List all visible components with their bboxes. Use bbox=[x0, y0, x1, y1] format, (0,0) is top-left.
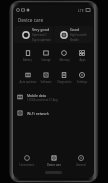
button[interactable]: Apps bbox=[73, 50, 91, 62]
button[interactable]: Diagnostics bbox=[55, 72, 73, 84]
staticText: Wi-Fi network bbox=[27, 111, 49, 116]
staticText: Storage bbox=[41, 58, 51, 62]
button[interactable]: Good battery bbox=[54, 26, 93, 43]
button[interactable]: Device care bbox=[40, 155, 67, 167]
button[interactable]: Software update bbox=[37, 72, 55, 84]
button[interactable]: Very good bbox=[14, 26, 53, 43]
staticText: Auto optimise bbox=[19, 80, 37, 84]
button[interactable]: Mobile data bbox=[15, 89, 92, 105]
staticText: Diagnostics bbox=[57, 80, 72, 84]
staticText: 1.8 GB used since 21 Aug bbox=[27, 98, 58, 102]
staticText: Connections bbox=[19, 163, 35, 167]
staticText: General bbox=[76, 163, 86, 167]
button[interactable]: Connections bbox=[13, 155, 40, 167]
staticText: Good battery bbox=[70, 27, 92, 32]
staticText: Device care bbox=[47, 163, 61, 167]
button[interactable]: General bbox=[67, 155, 94, 167]
staticText: Device care bbox=[18, 17, 44, 23]
staticText: Battery bbox=[23, 58, 32, 62]
staticText: Memory bbox=[59, 58, 70, 62]
button[interactable]: Auto optimise bbox=[18, 72, 37, 84]
staticText: High but with bbox=[70, 33, 87, 37]
staticText: Optimised 1 hour ago bbox=[32, 33, 52, 37]
button[interactable]: Wi-Fi network bbox=[15, 105, 92, 121]
staticText: Software update bbox=[37, 80, 55, 84]
staticText: Settings bbox=[77, 80, 87, 84]
button[interactable]: Battery bbox=[18, 50, 37, 62]
button[interactable]: Storage bbox=[37, 50, 55, 62]
staticText: Apps bbox=[79, 58, 86, 62]
button[interactable]: Memory bbox=[55, 50, 73, 62]
staticText: flexible bbox=[70, 38, 79, 42]
button[interactable]: Settings bbox=[73, 72, 91, 84]
staticText: Mobile data bbox=[27, 93, 46, 98]
staticText: LTE bbox=[78, 8, 84, 13]
staticText: Tap to optimise bbox=[32, 38, 51, 42]
staticText: Very good bbox=[32, 27, 50, 32]
